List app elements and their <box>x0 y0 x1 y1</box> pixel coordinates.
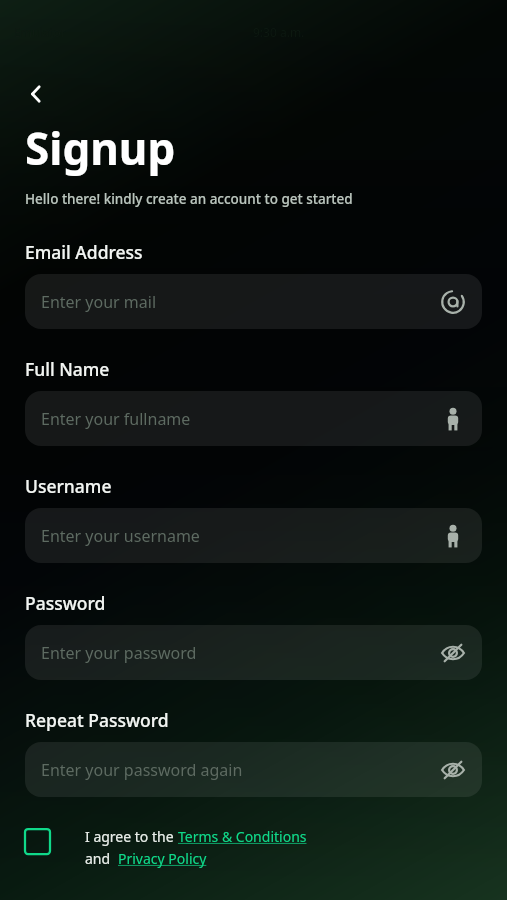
staticText: Enter your fullname <box>41 408 440 430</box>
button[interactable]: Privacy Policy <box>118 849 207 868</box>
button[interactable]: Enter your username <box>25 508 482 563</box>
staticText: Enter your mail <box>41 291 440 313</box>
staticText: Password <box>25 591 106 615</box>
staticText: Enter your password <box>41 642 440 664</box>
button[interactable]: Enter your password <box>25 625 482 680</box>
staticText: Full Name <box>25 357 110 381</box>
button[interactable]: Enter your mail <box>25 274 482 329</box>
staticText: Repeat Password <box>25 708 169 732</box>
button[interactable]: Enter your fullname <box>25 391 482 446</box>
staticText: Hello there! kindly create an account to… <box>25 190 353 208</box>
staticText: Username <box>25 474 112 498</box>
staticText: Enter your password again <box>41 759 440 781</box>
staticText: Enter your username <box>41 525 440 547</box>
button[interactable]: Enter your password again <box>25 742 482 797</box>
button[interactable]: Back <box>18 76 54 112</box>
staticText: I agree to the <box>85 827 178 846</box>
button[interactable]: Terms & Conditions <box>178 827 307 846</box>
staticText: and <box>85 849 118 868</box>
staticText: Email Address <box>25 240 143 264</box>
staticText: Signup <box>25 118 176 178</box>
button[interactable]: Agree to terms <box>25 829 50 854</box>
